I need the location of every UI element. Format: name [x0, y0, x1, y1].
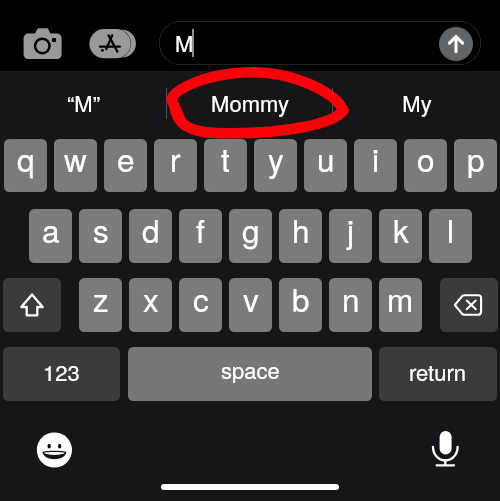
button[interactable]: z: [79, 278, 122, 332]
staticText: d: [142, 209, 160, 252]
button[interactable]: e: [104, 139, 147, 192]
button[interactable]: space: [128, 347, 372, 401]
button[interactable]: Emoji: [30, 426, 78, 474]
button[interactable]: l: [429, 209, 472, 263]
staticText: “M”: [67, 87, 100, 119]
staticText: o: [417, 139, 435, 181]
button[interactable]: g: [229, 209, 272, 263]
button[interactable]: w: [54, 139, 97, 192]
button[interactable]: Apps: [82, 20, 142, 70]
staticText: u: [317, 139, 335, 181]
button[interactable]: o: [404, 139, 447, 192]
staticText: t: [221, 139, 230, 181]
button[interactable]: Mommy: [166, 71, 333, 139]
staticText: f: [196, 209, 205, 252]
staticText: Mommy: [211, 87, 289, 119]
button[interactable]: a: [29, 209, 72, 263]
button[interactable]: return: [379, 347, 497, 401]
staticText: My: [402, 87, 432, 119]
staticText: w: [64, 139, 87, 181]
button[interactable]: n: [329, 278, 372, 332]
staticText: c: [193, 278, 209, 321]
button[interactable]: m: [379, 278, 422, 332]
staticText: q: [17, 139, 35, 181]
button[interactable]: c: [179, 278, 222, 332]
button[interactable]: Camera: [14, 20, 70, 70]
staticText: x: [143, 278, 159, 321]
staticText: s: [93, 209, 109, 252]
button[interactable]: Backspace: [440, 278, 498, 332]
staticText: 123: [43, 356, 80, 388]
button[interactable]: q: [4, 139, 47, 192]
staticText: e: [117, 139, 135, 181]
button[interactable]: b: [279, 278, 322, 332]
staticText: r: [170, 139, 181, 181]
staticText: g: [242, 209, 260, 252]
button[interactable]: y: [254, 139, 297, 192]
button[interactable]: u: [304, 139, 347, 192]
button[interactable]: 123: [3, 347, 120, 401]
staticText: y: [268, 139, 284, 181]
staticText: p: [467, 139, 485, 181]
button[interactable]: v: [229, 278, 272, 332]
staticText: M: [175, 27, 194, 59]
button[interactable]: x: [129, 278, 172, 332]
button[interactable]: “M”: [0, 71, 166, 139]
staticText: v: [243, 278, 259, 321]
button[interactable]: Dictation: [421, 426, 469, 474]
staticText: k: [393, 209, 409, 252]
button[interactable]: p: [454, 139, 497, 192]
staticText: b: [292, 278, 310, 321]
button[interactable]: k: [379, 209, 422, 263]
button[interactable]: t: [204, 139, 247, 192]
staticText: j: [347, 209, 354, 252]
button[interactable]: j: [329, 209, 372, 263]
button[interactable]: d: [129, 209, 172, 263]
staticText: a: [42, 209, 60, 252]
staticText: l: [447, 209, 454, 252]
staticText: space: [221, 354, 280, 386]
button[interactable]: r: [154, 139, 197, 192]
staticText: h: [292, 209, 310, 252]
button[interactable]: i: [354, 139, 397, 192]
staticText: m: [387, 278, 414, 321]
staticText: return: [409, 356, 467, 388]
staticText: z: [93, 278, 109, 321]
button[interactable]: Send: [439, 27, 473, 61]
button[interactable]: M: [159, 21, 481, 65]
staticText: n: [342, 278, 360, 321]
button[interactable]: f: [179, 209, 222, 263]
staticText: i: [372, 139, 379, 181]
button[interactable]: h: [279, 209, 322, 263]
button[interactable]: s: [79, 209, 122, 263]
button[interactable]: Shift: [3, 278, 61, 332]
button[interactable]: My: [333, 71, 500, 139]
